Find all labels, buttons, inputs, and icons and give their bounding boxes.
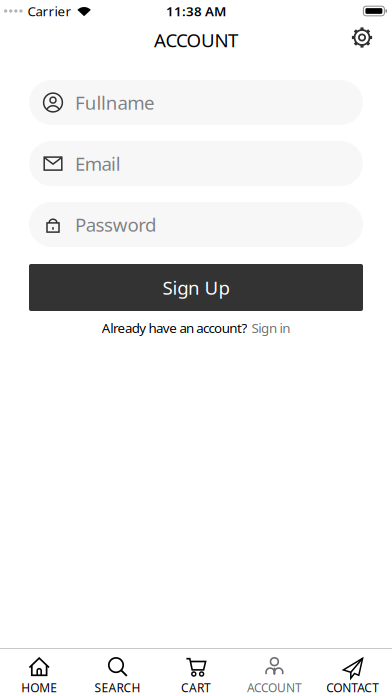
staticText: Sign in xyxy=(251,319,290,337)
button[interactable]: Password xyxy=(29,202,363,247)
button[interactable]: ACCOUNT xyxy=(235,649,314,696)
button[interactable]: Sign in xyxy=(251,319,290,337)
button[interactable]: SEARCH xyxy=(78,649,157,696)
staticText: CONTACT xyxy=(326,680,379,696)
button[interactable]: Settings xyxy=(347,22,377,52)
staticText: Already have an account? xyxy=(102,319,247,337)
button[interactable]: CART xyxy=(157,649,235,696)
staticText: HOME xyxy=(21,680,57,696)
staticText: CART xyxy=(181,680,211,696)
staticText: Password xyxy=(75,212,156,237)
staticText: Email xyxy=(75,151,121,176)
button[interactable]: Sign Up xyxy=(29,264,363,311)
staticText: Sign Up xyxy=(163,275,229,300)
button[interactable]: CONTACT xyxy=(314,649,392,696)
staticText: SEARCH xyxy=(95,680,141,696)
button[interactable]: Email xyxy=(29,141,363,186)
button[interactable]: HOME xyxy=(0,649,78,696)
staticText: ACCOUNT xyxy=(154,28,238,52)
staticText: Fullname xyxy=(75,90,155,115)
staticText: 11:38 AM xyxy=(166,2,226,20)
button[interactable]: Fullname xyxy=(29,80,363,125)
staticText: ACCOUNT xyxy=(247,680,302,696)
staticText: Carrier xyxy=(28,2,72,20)
